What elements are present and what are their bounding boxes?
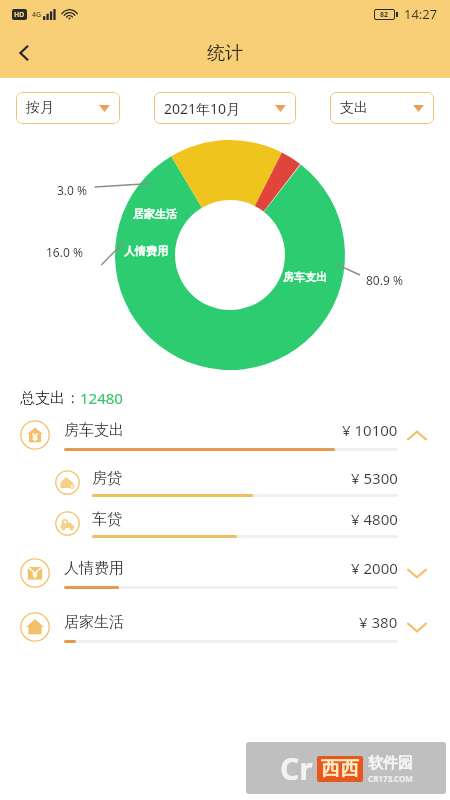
staticText: 车贷 xyxy=(92,510,122,529)
staticText: 房车支出 xyxy=(64,421,124,440)
button[interactable]: 车贷 xyxy=(0,509,450,538)
staticText: CR173.COM xyxy=(368,773,413,784)
button[interactable]: 房贷 xyxy=(0,468,450,497)
staticText: 82 xyxy=(380,10,389,20)
button[interactable]: 按月 xyxy=(16,92,120,124)
staticText: 80.9 % xyxy=(366,272,403,288)
staticText: 统计 xyxy=(207,42,243,65)
staticText: 人情费用 xyxy=(124,244,168,258)
staticText: Cr xyxy=(280,748,313,789)
staticText: HD xyxy=(14,10,25,20)
staticText: ¥ 4800 xyxy=(351,509,398,529)
staticText: ¥ 5300 xyxy=(351,468,398,488)
staticText: 人情费用 xyxy=(64,559,124,578)
staticText: 居家生活 xyxy=(133,207,177,221)
staticText: 总支出： xyxy=(20,389,80,408)
staticText: 16.0 % xyxy=(46,244,83,260)
button[interactable]: 人情费用 xyxy=(0,554,450,592)
staticText: 2021年10月 xyxy=(164,99,241,118)
button[interactable]: 居家生活 xyxy=(0,608,450,646)
staticText: 3.0 % xyxy=(57,182,88,198)
other: Expand xyxy=(398,554,436,592)
staticText: ¥ 380 xyxy=(359,612,398,632)
staticText: ¥ 2000 xyxy=(351,558,398,578)
other: Expand xyxy=(398,608,436,646)
staticText: 居家生活 xyxy=(64,613,124,632)
staticText: ¥ 10100 xyxy=(342,420,398,440)
staticText: 14:27 xyxy=(404,5,438,23)
button[interactable]: 2021年10月 xyxy=(154,92,296,124)
button[interactable]: 房车支出 xyxy=(0,416,450,454)
staticText: 西西 xyxy=(321,757,359,781)
button[interactable]: Back xyxy=(0,29,48,77)
other: Collapse xyxy=(398,416,436,454)
staticText: 软件园 xyxy=(368,754,413,773)
staticText: 房车支出 xyxy=(283,270,327,284)
staticText: 房贷 xyxy=(92,469,122,488)
staticText: 12480 xyxy=(80,388,123,408)
staticText: 按月 xyxy=(26,99,54,117)
staticText: 4G xyxy=(32,10,42,20)
staticText: 支出 xyxy=(340,99,368,117)
button[interactable]: 支出 xyxy=(330,92,434,124)
